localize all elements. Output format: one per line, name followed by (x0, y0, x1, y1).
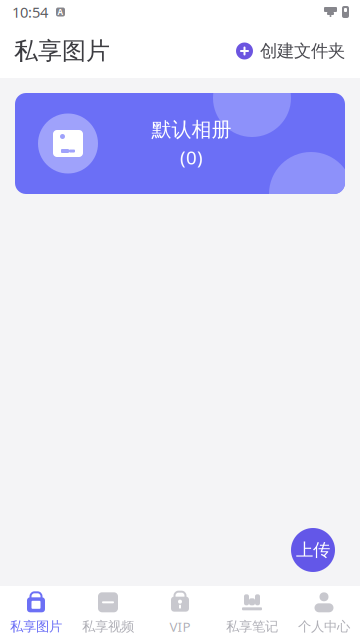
staticText: 私享视频 (82, 618, 134, 635)
staticText: 10:54 (12, 2, 48, 22)
staticText: A (57, 7, 63, 17)
button[interactable]: VIP (144, 582, 216, 640)
staticText: (0) (180, 145, 203, 170)
staticText: 创建文件夹 (260, 40, 345, 62)
button[interactable]: 私享笔记 (216, 582, 288, 640)
staticText: 私享图片 (10, 618, 62, 635)
button[interactable]: 上传 (291, 528, 335, 572)
staticText: 上传 (296, 539, 330, 561)
button[interactable]: 默认相册 (15, 93, 345, 194)
button[interactable]: 创建文件夹 (234, 32, 347, 70)
button[interactable]: 个人中心 (288, 582, 360, 640)
button[interactable]: 私享视频 (72, 582, 144, 640)
staticText: 个人中心 (298, 618, 350, 635)
staticText: VIP (169, 618, 190, 635)
button[interactable]: 私享图片 (0, 582, 72, 640)
staticText: 私享图片 (14, 36, 110, 66)
staticText: 私享笔记 (226, 618, 278, 635)
staticText: 默认相册 (151, 117, 231, 142)
